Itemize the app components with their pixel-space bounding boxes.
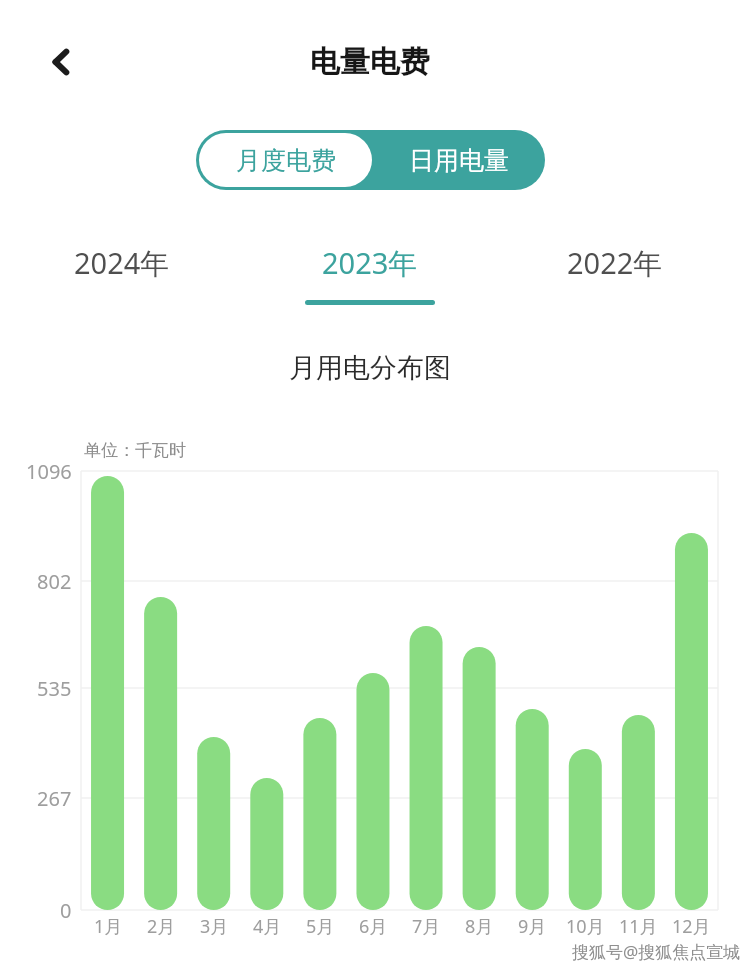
staticText: 电量电费 <box>0 43 740 81</box>
button[interactable]: 2024年 <box>47 243 197 321</box>
staticText: 7月 <box>412 914 441 939</box>
staticText: 12月 <box>672 914 711 939</box>
button[interactable]: 2022年 <box>540 243 690 321</box>
staticText: 8月 <box>465 914 494 939</box>
staticText: 802 <box>37 568 72 594</box>
button[interactable]: Back <box>32 32 92 92</box>
staticText: 2022年 <box>567 243 663 283</box>
staticText: 2023年 <box>322 243 418 283</box>
staticText: 月用电分布图 <box>0 351 740 385</box>
staticText: 267 <box>37 785 72 811</box>
staticText: 3月 <box>200 914 229 939</box>
button[interactable]: 2023年 <box>295 243 445 321</box>
button[interactable]: 月度电费 <box>199 133 372 187</box>
staticText: 5月 <box>306 914 335 939</box>
staticText: 11月 <box>619 914 658 939</box>
staticText: 月度电费 <box>236 145 336 176</box>
staticText: 1096 <box>26 458 72 484</box>
staticText: 单位：千瓦时 <box>84 440 186 461</box>
staticText: 10月 <box>566 914 605 939</box>
staticText: 0 <box>60 897 72 923</box>
button[interactable]: 日用电量 <box>372 130 545 190</box>
staticText: 2024年 <box>74 243 170 283</box>
staticText: 535 <box>37 675 72 701</box>
staticText: 6月 <box>359 914 388 939</box>
staticText: 4月 <box>253 914 282 939</box>
staticText: 1月 <box>94 914 123 939</box>
staticText: 搜狐号@搜狐焦点宣城站 <box>572 940 740 963</box>
staticText: 2月 <box>147 914 176 939</box>
staticText: 日用电量 <box>409 145 509 176</box>
staticText: 9月 <box>518 914 547 939</box>
